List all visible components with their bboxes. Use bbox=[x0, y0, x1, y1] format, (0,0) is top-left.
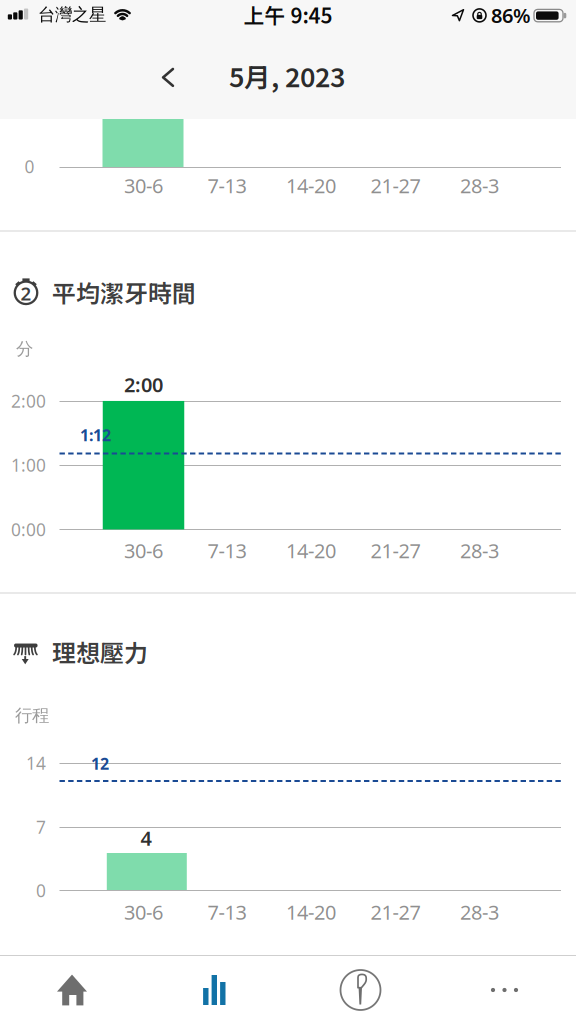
staticText: 21-27 bbox=[370, 172, 420, 199]
staticText: 分 bbox=[16, 338, 33, 360]
staticText: 86% bbox=[491, 2, 531, 28]
staticText: 28-3 bbox=[460, 899, 499, 925]
staticText: 2 bbox=[20, 281, 31, 306]
staticText: 7-13 bbox=[207, 899, 246, 925]
staticText: 28-3 bbox=[460, 537, 499, 564]
staticText: 0 bbox=[36, 879, 46, 902]
staticText: 1:00 bbox=[11, 453, 46, 476]
staticText: 30-6 bbox=[124, 172, 163, 199]
button[interactable]: Brush bbox=[288, 956, 432, 1024]
staticText: 行程 bbox=[15, 705, 49, 726]
staticText: 1:12 bbox=[80, 424, 111, 446]
staticText: 14-20 bbox=[286, 172, 336, 199]
button[interactable]: More bbox=[432, 956, 576, 1024]
staticText: 14-20 bbox=[286, 899, 336, 925]
button[interactable]: Back bbox=[146, 56, 190, 100]
staticText: 2:00 bbox=[11, 389, 46, 412]
staticText: 30-6 bbox=[124, 899, 163, 925]
staticText: 0 bbox=[24, 155, 34, 178]
staticText: 21-27 bbox=[370, 537, 420, 564]
staticText: 台灣之星 bbox=[38, 4, 106, 25]
staticText: 5月, 2023 bbox=[229, 56, 345, 95]
button[interactable]: Home bbox=[0, 956, 144, 1024]
staticText: 理想壓力 bbox=[52, 634, 148, 669]
staticText: 30-6 bbox=[124, 537, 163, 564]
button[interactable]: Statistics bbox=[144, 956, 288, 1024]
staticText: 2:00 bbox=[124, 371, 163, 398]
staticText: 0:00 bbox=[11, 518, 46, 541]
staticText: 4 bbox=[140, 825, 151, 851]
staticText: 7 bbox=[36, 815, 46, 838]
staticText: 12 bbox=[91, 753, 109, 774]
staticText: 28-3 bbox=[460, 172, 499, 199]
staticText: 21-27 bbox=[370, 899, 420, 925]
staticText: 7-13 bbox=[207, 172, 246, 199]
staticText: 14-20 bbox=[286, 537, 336, 564]
staticText: 平均潔牙時間 bbox=[52, 275, 196, 309]
staticText: 上午 9:45 bbox=[243, 0, 332, 29]
staticText: 14 bbox=[26, 751, 46, 774]
staticText: 7-13 bbox=[207, 537, 246, 564]
